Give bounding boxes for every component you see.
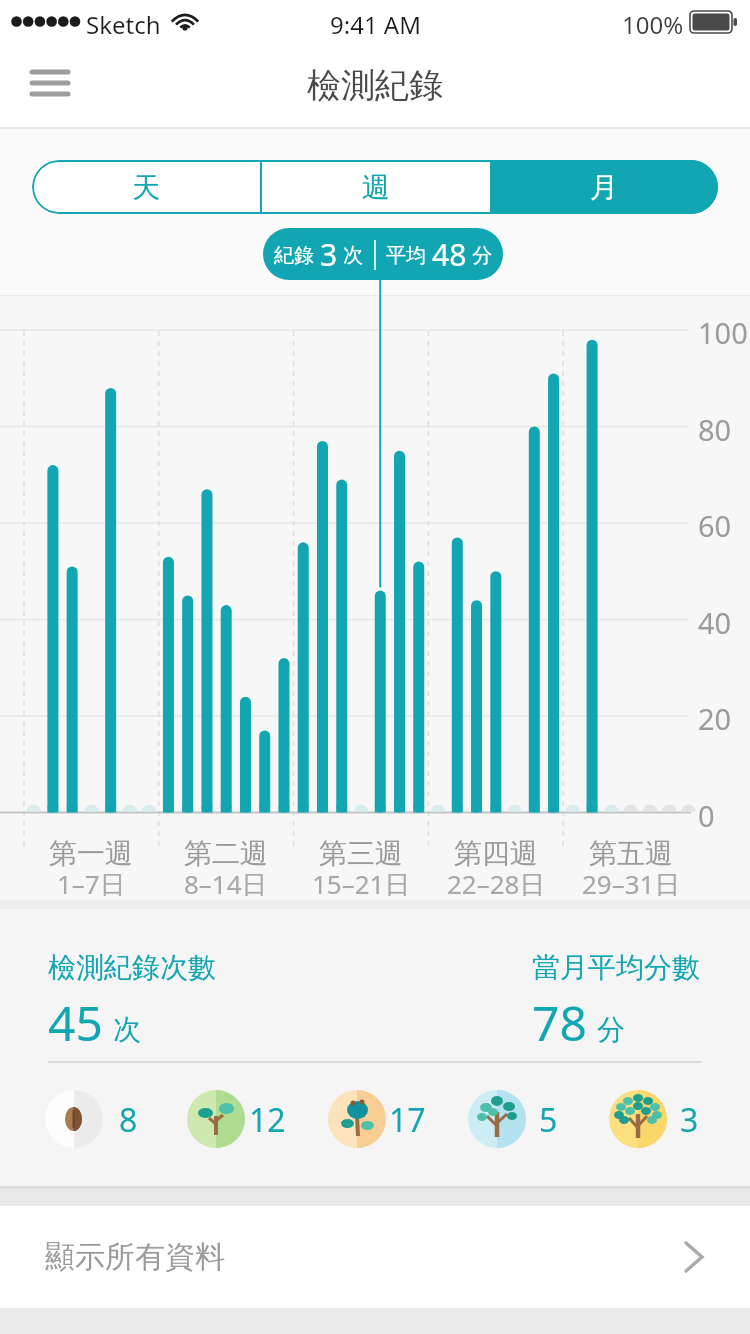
button[interactable]: 天 (32, 160, 260, 214)
staticText: 次 (338, 241, 364, 268)
staticText: 第三週 (319, 836, 403, 868)
staticText: 8–14日 (184, 866, 268, 896)
staticText: 檢測紀錄 (307, 64, 443, 106)
staticText: 3 (680, 1098, 699, 1140)
button[interactable]: 週 (262, 160, 490, 214)
staticText: 1–7日 (57, 866, 126, 896)
staticText: 100% (622, 8, 684, 41)
staticText: 第一週 (49, 836, 133, 868)
staticText: 8 (119, 1098, 138, 1140)
staticText: 週 (362, 170, 390, 205)
staticText: 60 (698, 506, 732, 540)
staticText: 分 (467, 241, 493, 268)
staticText: 48 (432, 234, 467, 275)
staticText: 40 (698, 603, 732, 637)
staticText: 9:41 AM (330, 8, 421, 36)
button[interactable]: 月 (490, 160, 718, 214)
staticText: 80 (698, 410, 732, 444)
staticText: 紀錄 (274, 241, 320, 268)
staticText: 第五週 (589, 836, 673, 868)
staticText: 29–31日 (582, 866, 681, 896)
button[interactable]: 顯示所有資料 (0, 1206, 750, 1308)
staticText: Sketch (86, 8, 161, 41)
staticText: 第四週 (454, 836, 538, 868)
staticText: 45 (48, 990, 103, 1055)
staticText: 15–21日 (312, 866, 411, 896)
staticText: 天 (132, 170, 160, 205)
staticText: 0 (698, 796, 715, 830)
staticText: 平均 (386, 241, 432, 268)
button[interactable] (28, 62, 72, 106)
staticText: 100 (698, 313, 748, 347)
staticText: 次 (113, 1012, 141, 1047)
staticText: 當月平均分數 (532, 950, 700, 985)
staticText: 顯示所有資料 (45, 1238, 225, 1276)
staticText: 17 (389, 1098, 426, 1140)
staticText: 12 (249, 1098, 286, 1140)
staticText: 月 (590, 170, 618, 205)
staticText: 78 (532, 990, 587, 1055)
staticText: 5 (539, 1098, 558, 1140)
staticText: 3 (320, 234, 338, 275)
staticText: 20 (698, 699, 732, 733)
staticText: 分 (597, 1012, 625, 1047)
staticText: 第二週 (184, 836, 268, 868)
staticText: 22–28日 (447, 866, 546, 896)
staticText: 檢測紀錄次數 (48, 950, 216, 985)
